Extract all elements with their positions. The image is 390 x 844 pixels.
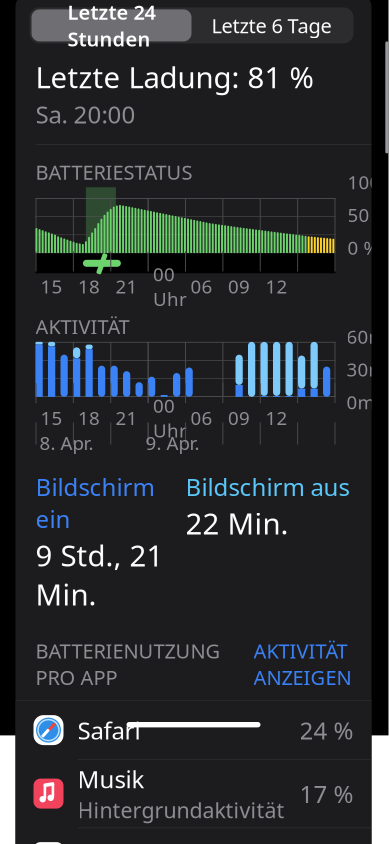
- staticText: AKTIVITÄT ANZEIGEN: [253, 637, 351, 691]
- staticText: 100 %: [347, 170, 390, 194]
- staticText: Bildschirm ein: [35, 471, 154, 534]
- staticText: 00 Uhr: [153, 393, 187, 443]
- button[interactable]: Letzte 24 Stunden: [31, 9, 191, 41]
- staticText: 12: [265, 274, 287, 299]
- staticText: BATTERIENUTZUNG PRO APP: [35, 637, 220, 691]
- staticText: 09: [228, 274, 250, 299]
- button[interactable]: Letzte 6 Tage: [191, 9, 351, 41]
- staticText: 60min: [346, 324, 390, 349]
- button[interactable]: Safari: [15, 701, 371, 759]
- staticText: 15: [40, 405, 62, 430]
- button[interactable]: Musik: [15, 759, 371, 828]
- staticText: 22 Min.: [185, 504, 288, 543]
- staticText: Safari: [77, 714, 140, 746]
- staticText: Hintergrundaktivität: [77, 796, 284, 824]
- staticText: Letzte Ladung: 81 %: [35, 57, 313, 96]
- staticText: Musik: [77, 763, 144, 795]
- staticText: 06: [190, 405, 212, 430]
- staticText: Bildschirm aus: [185, 471, 349, 503]
- staticText: 9. Apr.: [145, 430, 199, 455]
- staticText: AKTIVITÄT: [35, 313, 129, 340]
- button[interactable]: YouTube: [15, 828, 371, 844]
- staticText: BATTERIESTATUS: [35, 159, 192, 185]
- staticText: 30min: [346, 357, 390, 382]
- staticText: 00 Uhr: [153, 261, 187, 311]
- staticText: 18: [78, 274, 100, 299]
- staticText: 24 %: [299, 714, 353, 746]
- staticText: 09: [228, 405, 250, 430]
- staticText: 06: [190, 274, 212, 299]
- staticText: Letzte 24 Stunden: [67, 0, 155, 52]
- staticText: 0min: [346, 390, 390, 414]
- staticText: 18: [78, 405, 100, 430]
- staticText: 17 %: [299, 778, 353, 810]
- staticText: 21: [115, 405, 137, 430]
- staticText: Sa. 20:00: [35, 98, 135, 130]
- staticText: 9 Std., 21 Min.: [35, 536, 163, 613]
- staticText: 50 %: [347, 202, 390, 227]
- staticText: 8. Apr.: [39, 430, 93, 455]
- staticText: Letzte 6 Tage: [211, 12, 331, 39]
- staticText: 21: [115, 274, 137, 299]
- button[interactable]: AKTIVITÄT ANZEIGEN: [253, 637, 351, 691]
- staticText: 12: [265, 405, 287, 430]
- staticText: 15: [40, 274, 62, 299]
- staticText: 0 %: [347, 235, 379, 260]
